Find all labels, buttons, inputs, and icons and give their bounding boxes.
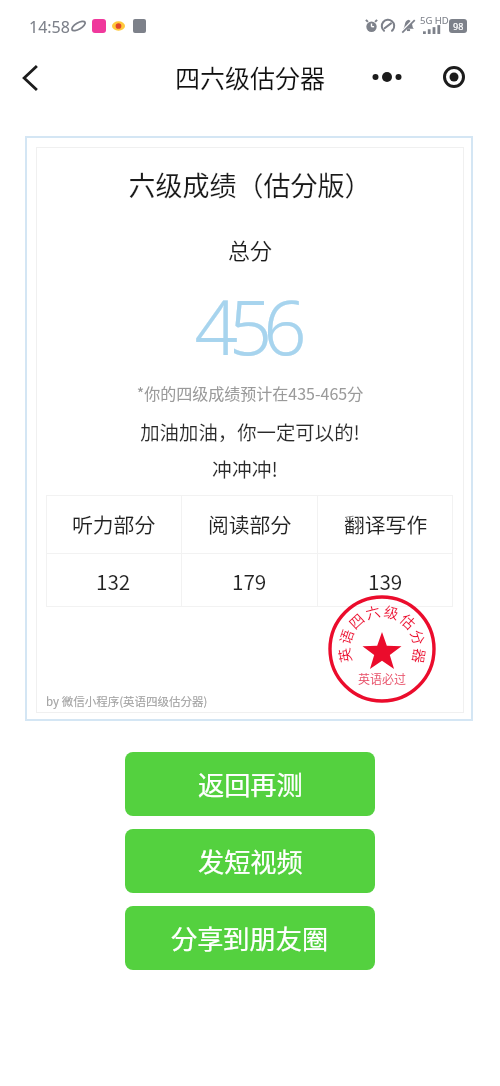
staticText: 179 bbox=[232, 566, 267, 596]
staticText: 六级成绩（估分版） bbox=[36, 165, 464, 204]
staticText: 四六级估分器 bbox=[175, 59, 326, 95]
staticText: *你的四级成绩预计在435-465分 bbox=[36, 381, 464, 404]
staticText: 翻译写作 bbox=[344, 509, 428, 539]
staticText: 加油加油，你一定可以的! bbox=[36, 417, 464, 445]
staticText: 5G HD bbox=[420, 14, 449, 27]
staticText: 98 bbox=[453, 20, 464, 32]
staticText: 阅读部分 bbox=[208, 509, 292, 539]
button[interactable]: Close mini program bbox=[436, 59, 472, 95]
staticText: 语 bbox=[333, 626, 358, 647]
staticText: 估 bbox=[396, 608, 421, 634]
staticText: 四 bbox=[343, 608, 369, 633]
staticText: 139 bbox=[368, 566, 403, 596]
button[interactable]: 发短视频 bbox=[125, 829, 375, 893]
staticText: 英 bbox=[332, 646, 356, 664]
staticText: by 微信小程序(英语四级估分器) bbox=[46, 693, 208, 710]
button[interactable]: 分享到朋友圈 bbox=[125, 906, 375, 970]
staticText: 分享到朋友圈 bbox=[171, 919, 329, 957]
staticText: 返回再测 bbox=[198, 765, 303, 803]
staticText: 听力部分 bbox=[72, 509, 156, 539]
button[interactable]: More options bbox=[365, 59, 409, 95]
staticText: 器 bbox=[408, 647, 431, 665]
staticText: 132 bbox=[96, 566, 131, 596]
button[interactable]: Back bbox=[8, 56, 52, 100]
staticText: 总分 bbox=[36, 233, 464, 265]
staticText: 级 bbox=[382, 600, 402, 624]
staticText: 14:58 bbox=[29, 16, 70, 38]
staticText: 456 bbox=[32, 274, 460, 378]
staticText: 发短视频 bbox=[198, 842, 303, 880]
staticText: 六 bbox=[363, 599, 383, 624]
staticText: 英语必过 bbox=[358, 670, 407, 687]
button[interactable]: 返回再测 bbox=[125, 752, 375, 816]
staticText: 分 bbox=[406, 627, 431, 648]
staticText: 冲冲冲! bbox=[31, 454, 459, 483]
